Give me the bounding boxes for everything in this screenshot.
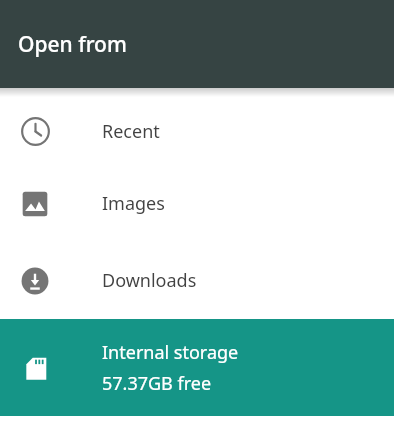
- other: Downloads: [20, 266, 50, 296]
- staticText: Internal storage: [102, 340, 239, 365]
- staticText: Open from: [18, 30, 127, 59]
- staticText: Downloads: [102, 268, 197, 293]
- staticText: Recent: [102, 119, 160, 144]
- button[interactable]: Downloads: [0, 242, 394, 319]
- button[interactable]: Recent: [0, 97, 394, 165]
- staticText: Images: [102, 191, 165, 216]
- staticText: 57.37GB free: [102, 371, 212, 396]
- button[interactable]: Internal storage: [0, 319, 394, 416]
- other: Recent: [20, 116, 50, 146]
- other: Images: [20, 189, 50, 219]
- button[interactable]: Images: [0, 165, 394, 242]
